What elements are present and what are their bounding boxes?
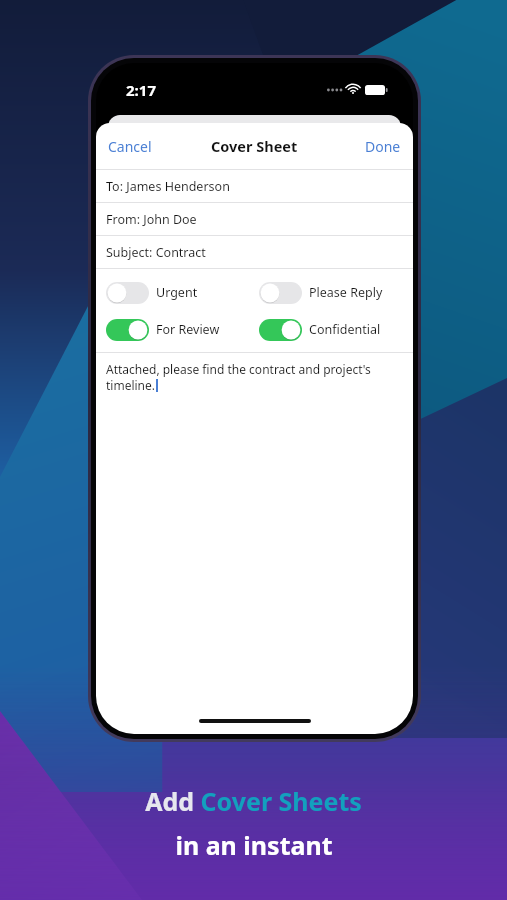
button[interactable]: For Review xyxy=(106,311,259,348)
staticText: Confidential xyxy=(309,321,381,338)
staticText: Please Reply xyxy=(309,284,383,301)
staticText: Cancel xyxy=(108,137,152,156)
staticText: For Review xyxy=(156,321,220,338)
staticText: timeline. xyxy=(106,377,156,393)
button[interactable]: Done xyxy=(353,129,413,164)
staticText: Cover Sheet xyxy=(211,136,298,156)
staticText: Urgent xyxy=(156,284,198,301)
button[interactable]: To: James Henderson xyxy=(96,170,413,202)
button[interactable]: Cancel xyxy=(96,129,164,164)
staticText: Attached, please find the contract and p… xyxy=(106,361,371,377)
staticText: From: John Doe xyxy=(106,211,197,228)
button[interactable]: Please Reply xyxy=(259,274,413,311)
staticText: 2:17 xyxy=(126,80,156,100)
button[interactable]: Confidential xyxy=(259,311,413,348)
staticText: To: James Henderson xyxy=(106,178,230,195)
button[interactable]: Urgent xyxy=(106,274,259,311)
staticText: in an instant xyxy=(175,828,333,862)
staticText: Subject: Contract xyxy=(106,244,206,261)
button[interactable]: From: John Doe xyxy=(96,203,413,235)
staticText: Done xyxy=(365,137,401,156)
button[interactable]: Subject: Contract xyxy=(96,236,413,268)
button[interactable]: Attached, please find the contract and p… xyxy=(96,353,413,734)
staticText: Add Cover Sheets xyxy=(145,784,362,818)
